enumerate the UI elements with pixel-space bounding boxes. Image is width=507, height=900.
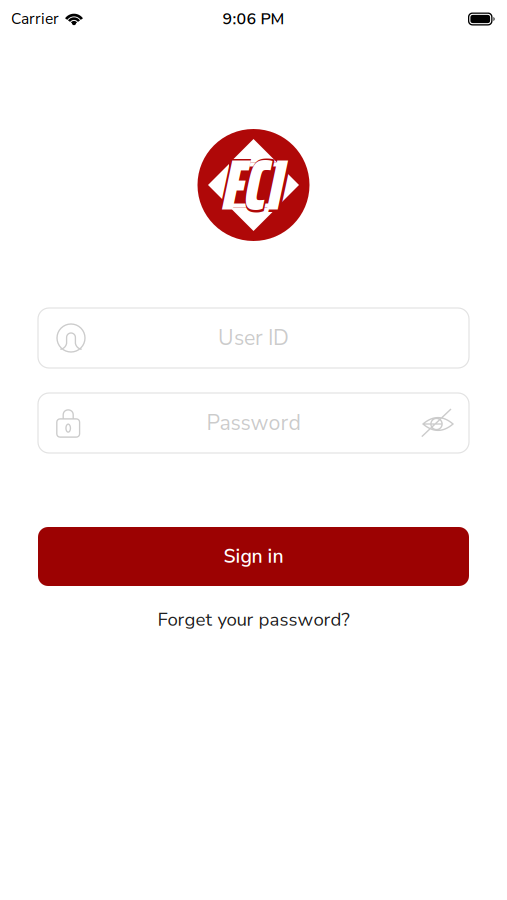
staticText: 9:06 PM xyxy=(222,8,284,30)
staticText: FCI xyxy=(223,129,284,241)
staticText: Forget your password? xyxy=(157,607,349,632)
staticText: FCI xyxy=(220,124,286,246)
button[interactable]: Sign in xyxy=(38,527,469,586)
button[interactable]: Show password xyxy=(421,407,455,439)
staticText: Sign in xyxy=(223,543,283,570)
staticText: Carrier xyxy=(11,8,59,29)
staticText: Password xyxy=(206,408,300,438)
button[interactable]: Forget your password? xyxy=(157,599,349,640)
staticText: User ID xyxy=(218,323,289,353)
